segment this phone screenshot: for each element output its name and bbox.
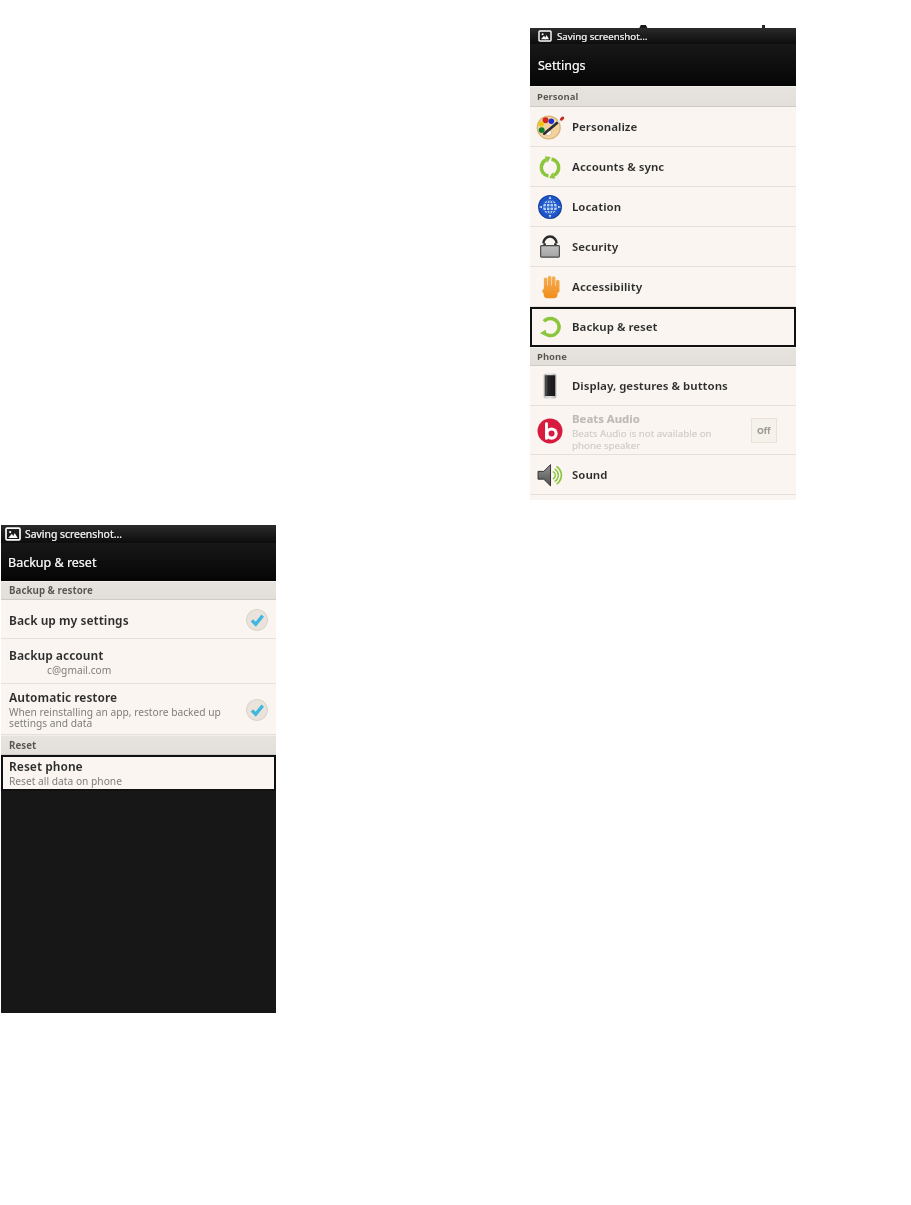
staticText: Automatic restore	[9, 689, 118, 705]
staticText: Back up my settings	[9, 612, 129, 628]
staticText: Backup & restore	[9, 584, 93, 597]
staticText: Beats Audio is not available on phone sp…	[572, 427, 718, 451]
button[interactable]: Display, gestures & buttons	[530, 366, 796, 406]
button[interactable]: Accounts & sync	[530, 147, 796, 187]
staticText: Personal	[537, 90, 579, 103]
staticText: Location	[572, 199, 622, 215]
staticText: Backup account	[9, 647, 104, 663]
button[interactable]: Toggle Back up my settings	[246, 609, 268, 631]
button[interactable]: Toggle Automatic restore	[246, 699, 268, 721]
staticText: Accounts & sync	[572, 159, 665, 175]
button[interactable]: Back up my settings	[1, 600, 276, 639]
staticText: Backup & reset	[8, 554, 97, 571]
button[interactable]: Backup & reset	[1, 543, 276, 581]
staticText: Saving screenshot…	[25, 527, 122, 541]
staticText: Display, gestures & buttons	[572, 378, 728, 394]
button[interactable]: Settings	[530, 44, 796, 86]
staticText: Security	[572, 239, 619, 255]
staticText: Backup & reset	[572, 319, 658, 335]
button[interactable]: Backup & reset	[530, 307, 796, 347]
button[interactable]: Accessibility	[530, 267, 796, 307]
staticText: Reset	[9, 739, 37, 752]
staticText: Off	[757, 425, 771, 437]
button[interactable]: Backup account	[1, 639, 276, 684]
staticText: Phone	[537, 350, 567, 363]
button[interactable]: Off	[751, 418, 777, 443]
staticText: Sound	[572, 467, 608, 483]
staticText: Reset all data on phone	[9, 774, 122, 788]
button[interactable]: Location	[530, 187, 796, 227]
staticText: c@gmail.com	[47, 663, 112, 677]
staticText: Settings	[538, 57, 586, 74]
staticText: Reset phone	[9, 758, 83, 774]
staticText: Saving screenshot…	[557, 30, 648, 43]
staticText: Accessibility	[572, 279, 643, 295]
staticText: Beats Audio	[572, 411, 640, 427]
staticText: When reinstalling an app, restore backed…	[9, 705, 225, 730]
button[interactable]: Automatic restore	[1, 684, 276, 735]
button[interactable]: Sound	[530, 455, 796, 495]
button[interactable]: Security	[530, 227, 796, 267]
button[interactable]: Beats Audio	[530, 406, 796, 455]
button[interactable]: Reset phone	[1, 755, 276, 791]
staticText: Personalize	[572, 119, 638, 135]
button[interactable]: Personalize	[530, 107, 796, 147]
